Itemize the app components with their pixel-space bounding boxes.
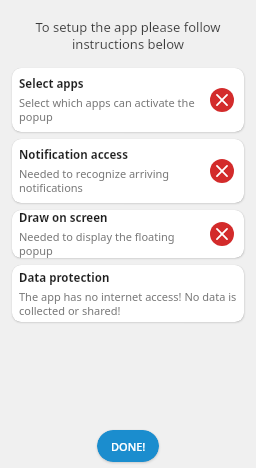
staticText: The app has no internet access! No data … xyxy=(19,289,237,318)
staticText: Notification access xyxy=(19,147,128,163)
button[interactable]: Not granted xyxy=(210,88,234,112)
staticText: Draw on screen xyxy=(19,210,108,226)
button[interactable]: Draw on screen xyxy=(12,210,244,258)
button[interactable]: Not granted xyxy=(210,159,234,183)
staticText: To setup the app please follow instructi… xyxy=(14,18,242,53)
staticText: Select which apps can activate the popup xyxy=(19,95,195,124)
staticText: Needed to recognize arriving notificatio… xyxy=(19,166,170,195)
staticText: DONE! xyxy=(111,439,146,454)
button[interactable]: DONE! xyxy=(97,430,159,462)
staticText: Data protection xyxy=(19,270,110,286)
button[interactable]: Select apps xyxy=(12,68,244,132)
button[interactable]: Notification access xyxy=(12,139,244,203)
staticText: Needed to display the floating popup xyxy=(19,229,204,258)
staticText: Select apps xyxy=(19,76,84,92)
button[interactable]: Not granted xyxy=(210,222,234,246)
button[interactable]: Data protection xyxy=(12,265,244,322)
